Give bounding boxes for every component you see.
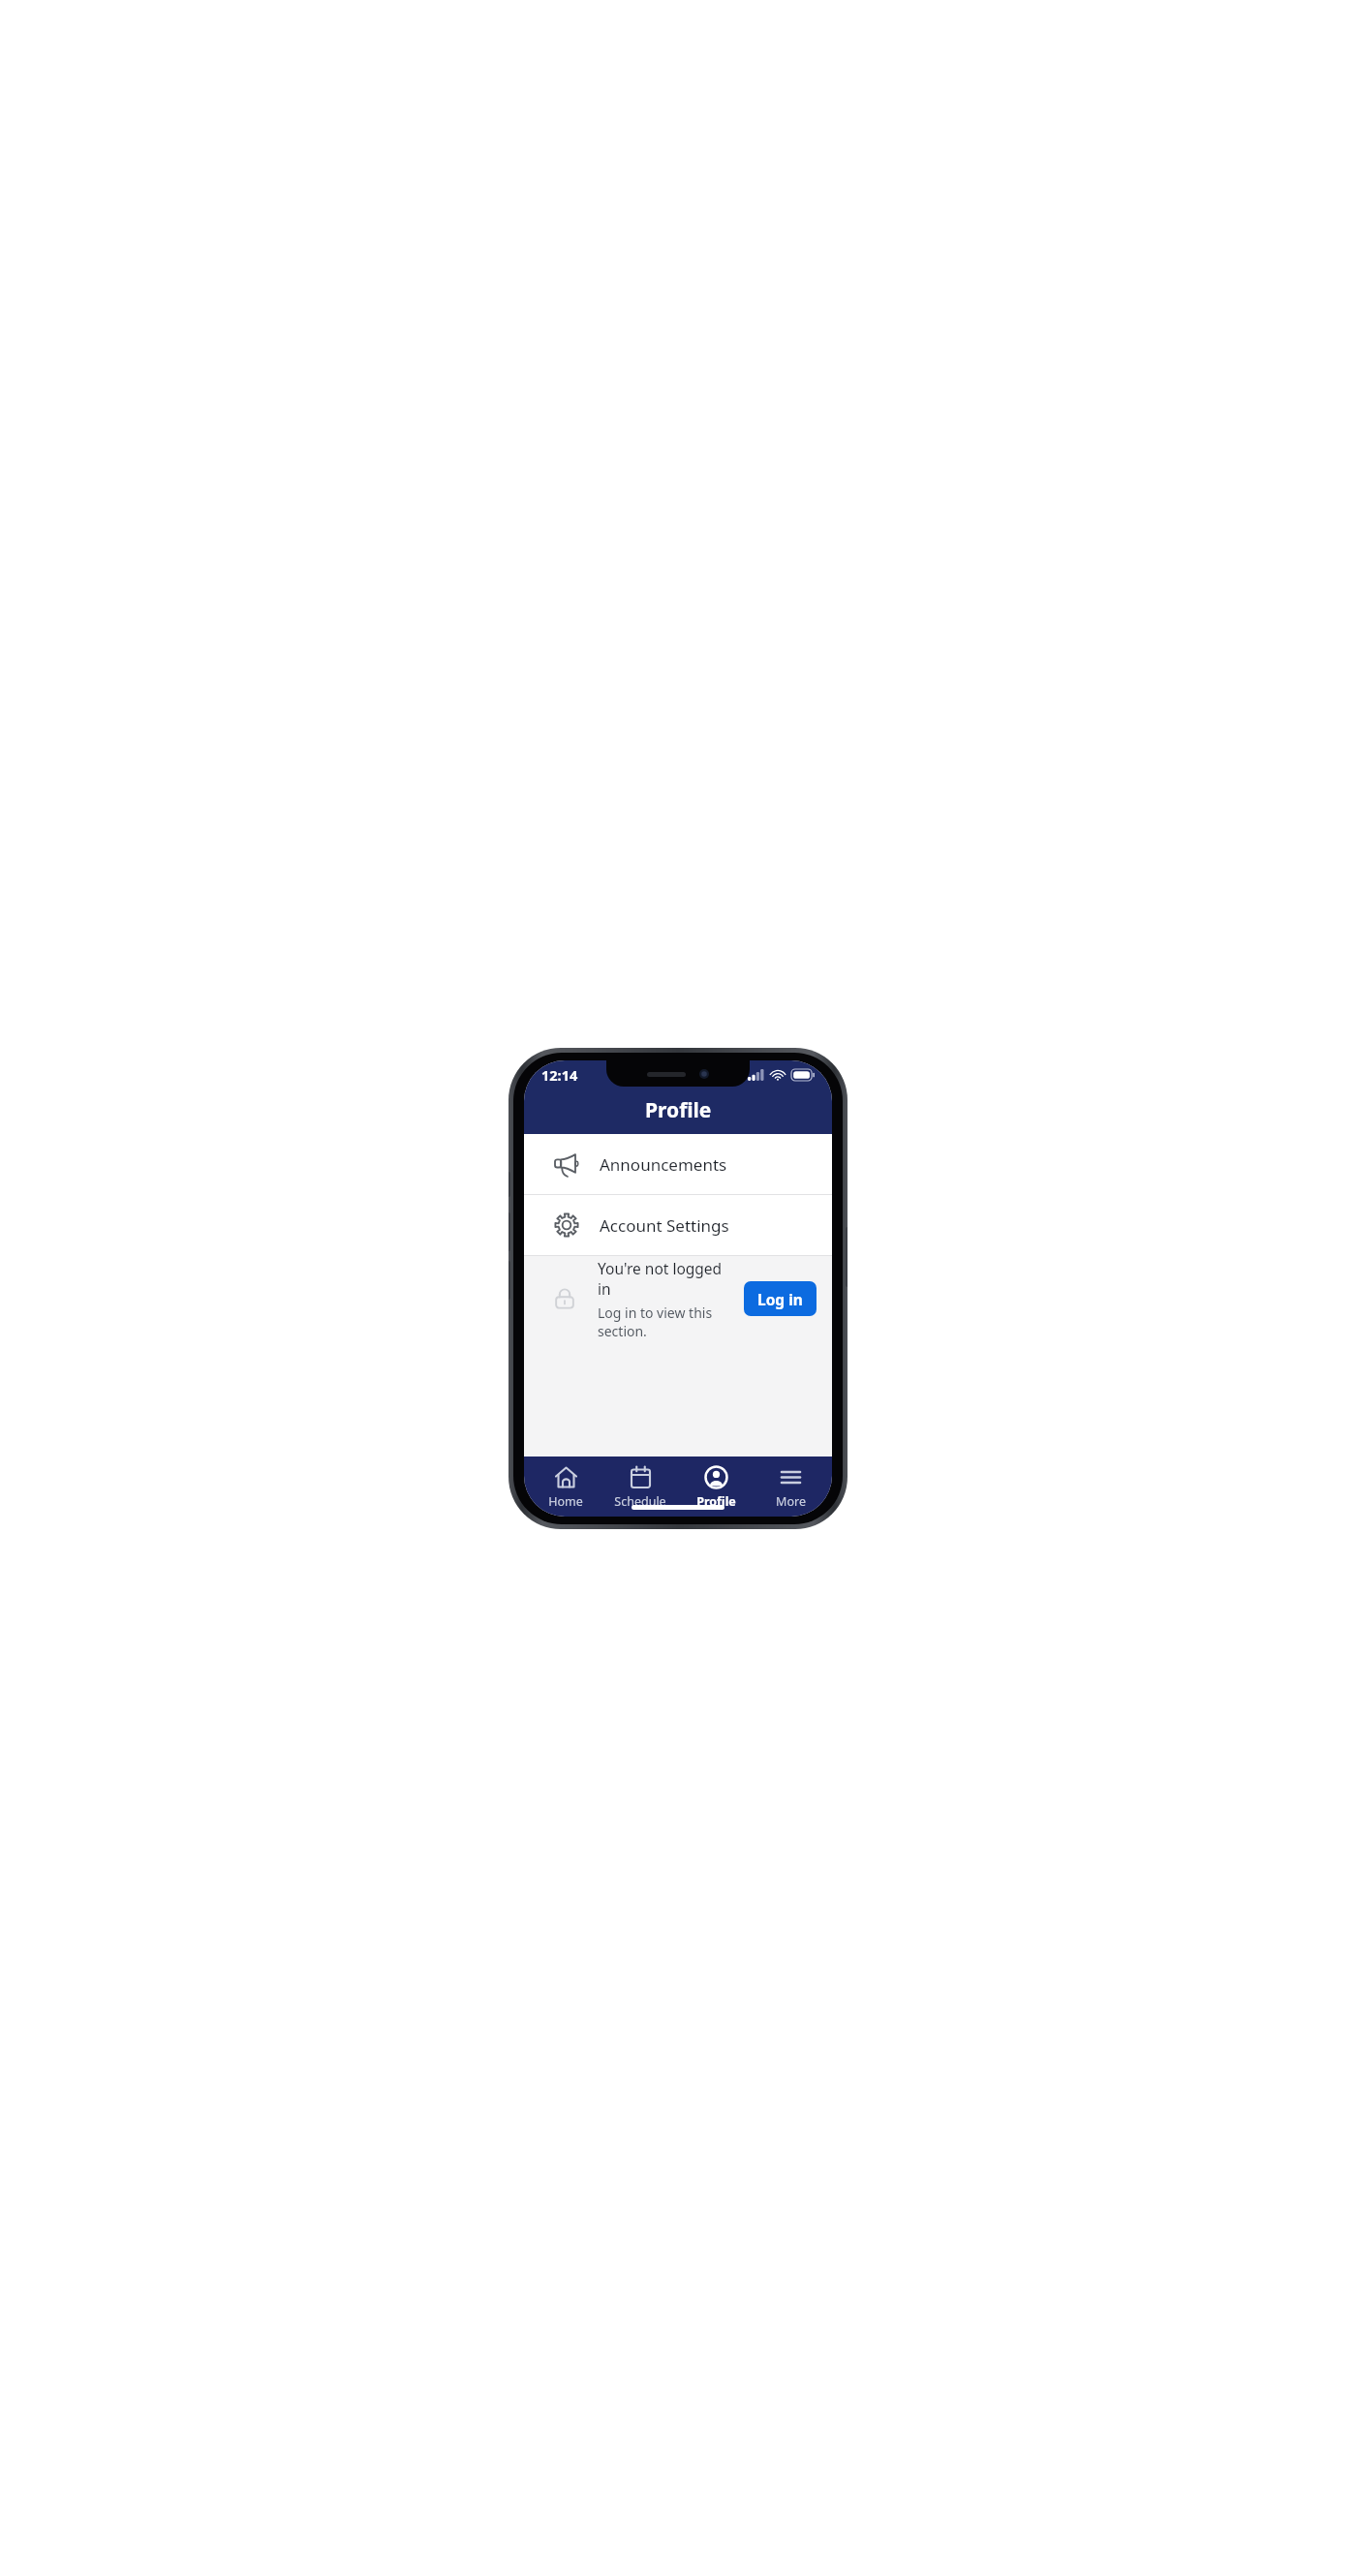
staticText: Home [548,1493,583,1510]
staticText: 12:14 [541,1065,578,1085]
staticText: Profile [645,1096,712,1124]
other: Profile [704,1465,728,1489]
button[interactable]: Account Settings [524,1195,832,1255]
other: Schedule [629,1465,653,1489]
other: Home [554,1465,578,1489]
other: More [779,1465,803,1489]
staticText: You're not logged in [598,1258,736,1299]
staticText: Announcements [600,1153,727,1176]
button[interactable]: Log in [744,1281,817,1316]
button[interactable]: Profile [682,1462,750,1513]
button[interactable]: Announcements [524,1134,832,1194]
staticText: Log in [757,1289,803,1309]
staticText: Schedule [614,1493,666,1510]
button[interactable]: More [756,1462,824,1513]
staticText: More [776,1493,806,1510]
staticText: Log in to view this section. [598,1303,736,1340]
staticText: Profile [696,1493,736,1510]
staticText: Account Settings [600,1214,729,1237]
button[interactable]: Home [532,1462,600,1513]
button[interactable]: Schedule [606,1462,674,1513]
